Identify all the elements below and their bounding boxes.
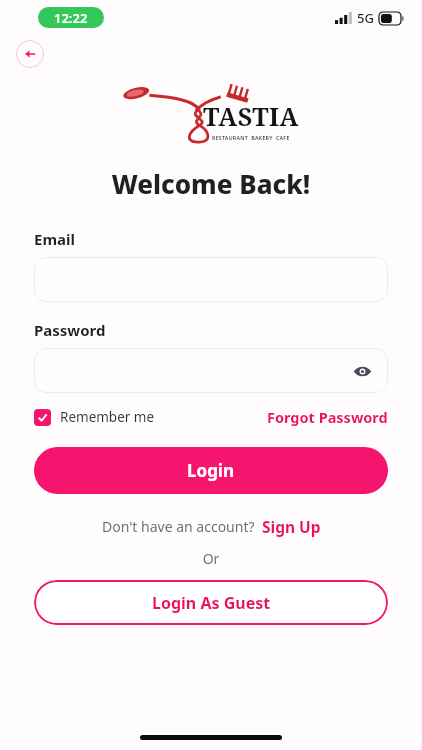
- staticText: Login: [187, 459, 235, 482]
- staticText: Or: [34, 549, 388, 568]
- button[interactable]: Back: [16, 40, 44, 68]
- staticText: 12:22: [54, 9, 88, 27]
- staticText: TASTIA: [203, 99, 299, 133]
- button[interactable]: Sign Up: [262, 516, 321, 537]
- button[interactable]: Login As Guest: [34, 580, 388, 625]
- staticText: Welcome Back!: [0, 166, 422, 201]
- staticText: Remember me: [60, 408, 155, 426]
- staticText: Don't have an account?: [102, 517, 255, 536]
- staticText: 5G: [357, 9, 374, 27]
- button[interactable]: Login: [34, 447, 388, 494]
- button[interactable]: Forgot Password: [267, 407, 388, 427]
- button[interactable]: Show password: [34, 348, 388, 393]
- button[interactable]: Remember me: [34, 408, 155, 426]
- staticText: Password: [34, 320, 106, 340]
- staticText: Sign Up: [262, 516, 321, 537]
- button[interactable]: Show password: [350, 359, 374, 383]
- button[interactable]: [34, 257, 388, 302]
- staticText: Forgot Password: [267, 407, 388, 427]
- staticText: Login As Guest: [152, 592, 271, 614]
- staticText: RESTAURANT BAKERY CAFE: [212, 134, 290, 141]
- staticText: Email: [34, 229, 75, 249]
